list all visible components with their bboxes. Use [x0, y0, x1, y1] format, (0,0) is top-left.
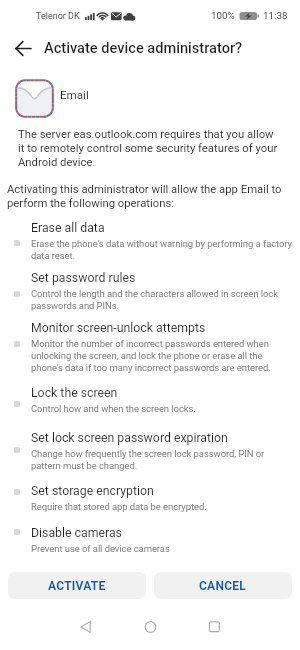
staticText: Set password rules [31, 271, 136, 285]
staticText: Activating this administrator will allow… [7, 183, 282, 210]
button[interactable] [200, 614, 230, 640]
button[interactable] [0, 384, 300, 414]
button[interactable] [135, 614, 165, 640]
button[interactable] [0, 482, 300, 512]
staticText: Erase the phone's data without warning b… [31, 238, 293, 261]
staticText: Set lock screen password expiration [31, 431, 228, 445]
staticText: The server eas.outlook.com requires that… [18, 128, 278, 169]
staticText: Control how and when the screen locks. [31, 403, 196, 414]
staticText: 100% [211, 10, 235, 21]
button[interactable] [0, 269, 300, 299]
button[interactable] [6, 36, 40, 60]
staticText: Prevent use of all device cameras [31, 543, 170, 554]
staticText: Set storage encryption [31, 484, 154, 498]
button[interactable] [0, 319, 300, 349]
button[interactable]: Email [0, 74, 300, 122]
staticText: Disable cameras [31, 526, 122, 540]
staticText: 11:38 [263, 10, 288, 21]
staticText: Lock the screen [31, 386, 118, 400]
staticText: Control the length and the characters al… [31, 288, 278, 311]
button[interactable]: CANCEL [154, 572, 292, 599]
button[interactable] [0, 524, 300, 554]
button[interactable] [0, 429, 300, 459]
staticText: Monitor screen-unlock attempts [31, 321, 206, 335]
staticText: Activate device administrator? [44, 39, 243, 56]
staticText: Require that stored app data be encrypte… [31, 501, 207, 512]
staticText: Email [60, 88, 89, 102]
staticText: Telenor DK [36, 11, 80, 22]
button[interactable] [0, 219, 300, 249]
staticText: Monitor the number of incorrect password… [31, 338, 271, 373]
button[interactable]: ACTIVATE [8, 572, 146, 599]
staticText: ACTIVATE [48, 579, 106, 593]
staticText: CANCEL [199, 579, 247, 593]
staticText: Erase all data [31, 221, 105, 235]
staticText: Change how frequently the screen lock pa… [31, 448, 265, 471]
button[interactable] [70, 614, 100, 640]
